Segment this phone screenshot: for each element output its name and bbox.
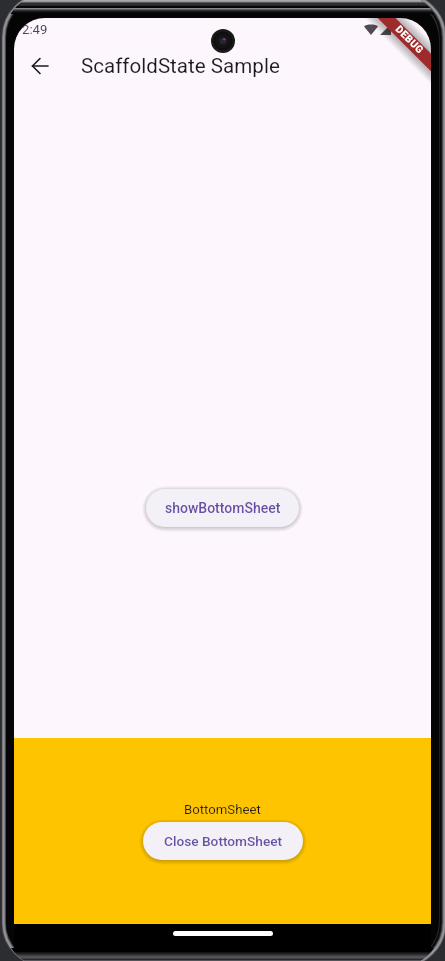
button[interactable]: showBottomSheet xyxy=(146,489,299,527)
staticText: DEBUG xyxy=(393,23,426,57)
staticText: Close BottomSheet xyxy=(164,833,283,849)
button[interactable]: Back xyxy=(26,52,54,80)
staticText: BottomSheet xyxy=(184,802,261,817)
staticText: ScaffoldState Sample xyxy=(81,54,280,78)
staticText: 2:49 xyxy=(22,22,48,37)
button[interactable]: Close BottomSheet xyxy=(143,822,303,860)
staticText: showBottomSheet xyxy=(165,500,281,516)
